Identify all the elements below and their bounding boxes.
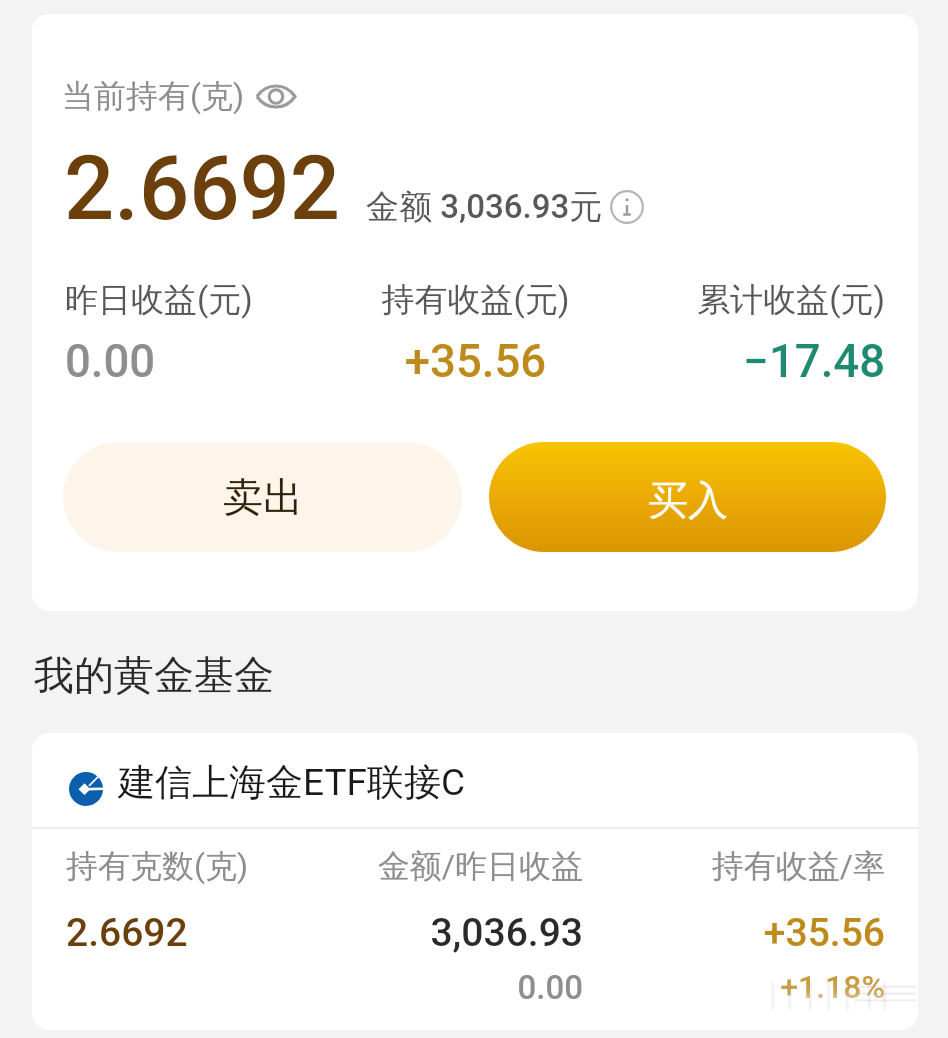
staticText: 建信上海金ETF联接C	[118, 759, 466, 806]
button[interactable]: 建信上海金ETF联接C	[32, 733, 918, 827]
staticText: +35.56	[632, 910, 885, 956]
button[interactable]: 买入	[489, 442, 886, 552]
staticText: 当前持有(克)	[62, 76, 245, 116]
staticText: 0.00	[65, 335, 339, 388]
staticText: 金额/昨日收益	[332, 846, 583, 886]
button[interactable]: 当前持有(克)	[62, 76, 296, 116]
staticText: 2.6692	[64, 137, 341, 241]
staticText: 持有克数(克)	[66, 846, 249, 886]
staticText: 卖出	[223, 472, 303, 522]
other: Toggle amount visibility	[256, 82, 296, 110]
other: Info	[610, 190, 644, 224]
staticText: 买入	[648, 475, 728, 525]
button[interactable]: 金额 3,036.93元	[366, 186, 644, 228]
staticText: 2.6692	[66, 910, 188, 956]
staticText: 0.00	[332, 968, 583, 1007]
staticText: 持有收益/率	[632, 846, 885, 886]
staticText: 昨日收益(元)	[65, 279, 339, 321]
staticText: 3,036.93	[332, 910, 583, 956]
staticText: 金额 3,036.93元	[366, 186, 603, 228]
button[interactable]: 卖出	[63, 442, 462, 552]
staticText: +1.18%	[632, 968, 885, 1006]
staticText: −17.48	[612, 335, 885, 388]
staticText: +35.56	[339, 335, 612, 388]
staticText: 累计收益(元)	[612, 279, 885, 321]
staticText: 持有收益(元)	[339, 279, 612, 321]
staticText: 我的黄金基金	[34, 650, 274, 700]
